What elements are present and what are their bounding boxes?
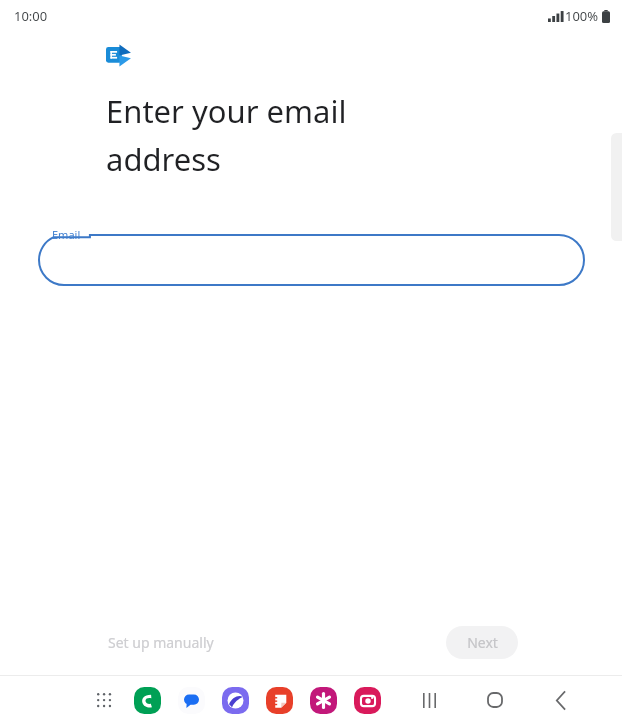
staticText: Enter your email address bbox=[106, 90, 347, 180]
button[interactable]: Next bbox=[446, 626, 518, 659]
button[interactable]: Internet bbox=[220, 685, 250, 715]
staticText: Set up manually bbox=[108, 633, 214, 652]
staticText: 10:00 bbox=[14, 7, 48, 25]
button[interactable]: Recents bbox=[412, 683, 446, 717]
button[interactable]: Set up manually bbox=[94, 625, 228, 660]
button[interactable]: Back bbox=[544, 683, 578, 717]
button[interactable]: Phone bbox=[132, 685, 162, 715]
button[interactable]: Apps bbox=[90, 686, 118, 714]
button[interactable]: Messages bbox=[176, 685, 206, 715]
button[interactable]: Email bbox=[38, 222, 585, 286]
button[interactable]: Camera bbox=[352, 685, 382, 715]
staticText: Email bbox=[52, 227, 81, 242]
button[interactable]: Galaxy Store bbox=[308, 685, 338, 715]
button[interactable]: Home bbox=[478, 683, 512, 717]
staticText: 100% bbox=[565, 7, 599, 25]
button[interactable]: Notes bbox=[264, 685, 294, 715]
staticText: Next bbox=[467, 633, 498, 652]
